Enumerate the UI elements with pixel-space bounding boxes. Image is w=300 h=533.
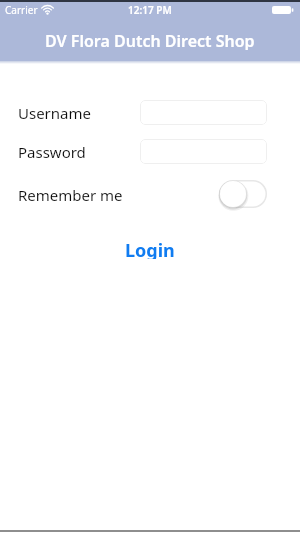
staticText: Password bbox=[18, 142, 86, 162]
staticText: 12:17 PM bbox=[128, 3, 172, 17]
staticText: DV Flora Dutch Direct Shop bbox=[45, 30, 255, 50]
button[interactable]: Login bbox=[0, 238, 300, 259]
staticText: Login bbox=[125, 238, 175, 259]
button[interactable] bbox=[219, 180, 267, 208]
staticText: Remember me bbox=[18, 185, 123, 205]
staticText: Carrier bbox=[5, 3, 38, 17]
button[interactable] bbox=[140, 139, 267, 164]
button[interactable] bbox=[140, 100, 267, 125]
staticText: Username bbox=[18, 103, 91, 123]
